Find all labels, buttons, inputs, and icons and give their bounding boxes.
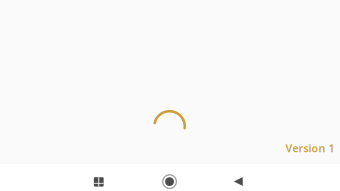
staticText: Version 1 bbox=[285, 141, 334, 155]
button[interactable]: Back bbox=[226, 169, 250, 191]
button[interactable]: Recent apps bbox=[87, 169, 111, 191]
button[interactable]: Home bbox=[157, 169, 181, 191]
